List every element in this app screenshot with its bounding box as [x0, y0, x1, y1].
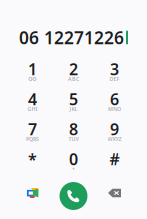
- button[interactable]: 3: [94, 58, 135, 88]
- button[interactable]: 7: [12, 118, 53, 148]
- button[interactable]: *: [12, 148, 53, 178]
- button[interactable]: 6: [94, 88, 135, 118]
- staticText: 3: [110, 58, 119, 80]
- button[interactable]: #: [94, 148, 135, 178]
- staticText: 2: [69, 58, 78, 80]
- staticText: WXYZ: [107, 135, 121, 143]
- button[interactable]: 8: [53, 118, 94, 148]
- staticText: 7: [28, 118, 37, 140]
- button[interactable]: 5: [53, 88, 94, 118]
- staticText: 5: [69, 88, 78, 110]
- button[interactable]: 2: [53, 58, 94, 88]
- button[interactable]: Delete: [94, 179, 135, 207]
- staticText: 8: [69, 118, 78, 140]
- staticText: TUV: [68, 135, 78, 143]
- button[interactable]: 4: [12, 88, 53, 118]
- staticText: ABC: [68, 75, 79, 83]
- staticText: JKL: [69, 105, 77, 113]
- staticText: 0: [69, 148, 78, 170]
- staticText: 1: [28, 58, 37, 80]
- button[interactable]: 9: [94, 118, 135, 148]
- staticText: GHI: [27, 105, 37, 113]
- staticText: DEF: [109, 75, 119, 83]
- staticText: 6: [110, 88, 119, 110]
- button[interactable]: Call: [53, 179, 94, 207]
- staticText: +: [72, 165, 75, 173]
- staticText: #: [109, 148, 119, 170]
- staticText: *: [28, 148, 37, 170]
- staticText: 9: [110, 118, 119, 140]
- staticText: 4: [28, 88, 37, 110]
- button[interactable]: 0: [53, 148, 94, 178]
- staticText: MNO: [108, 105, 121, 113]
- staticText: 06 12271226: [19, 26, 124, 49]
- staticText: PQRS: [26, 135, 39, 143]
- button[interactable]: 1: [12, 58, 53, 88]
- button[interactable]: Video call: [12, 179, 53, 207]
